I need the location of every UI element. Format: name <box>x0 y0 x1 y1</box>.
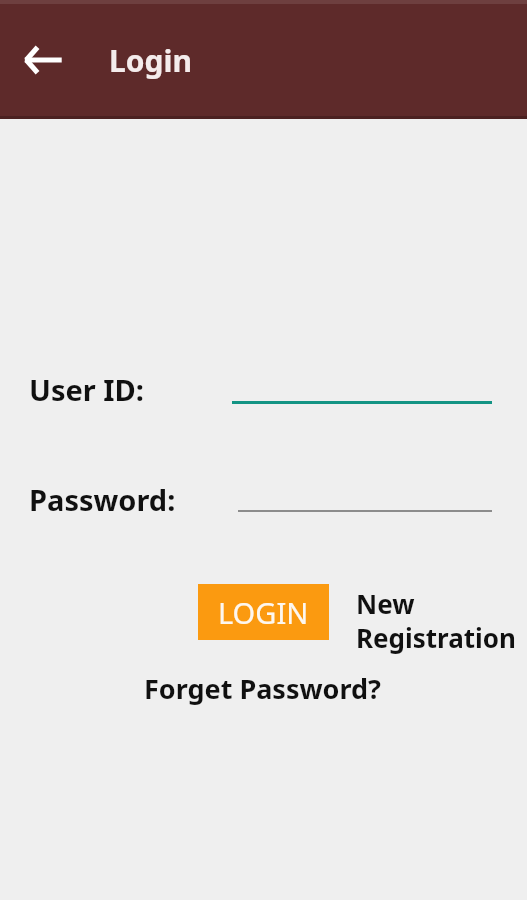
button[interactable]: LOGIN <box>198 584 329 640</box>
button[interactable]: Back <box>17 34 69 86</box>
staticText: User ID: <box>29 370 144 409</box>
staticText: New Registration <box>356 586 518 656</box>
button[interactable]: New Registration <box>356 586 518 656</box>
button[interactable]: Forget Password? <box>144 670 381 707</box>
staticText: Password: <box>29 480 176 519</box>
staticText: Login <box>109 40 192 81</box>
staticText: LOGIN <box>218 593 309 632</box>
staticText: Forget Password? <box>144 670 381 707</box>
button[interactable]: Password input field <box>238 510 492 544</box>
button[interactable]: User ID input field <box>232 401 492 435</box>
